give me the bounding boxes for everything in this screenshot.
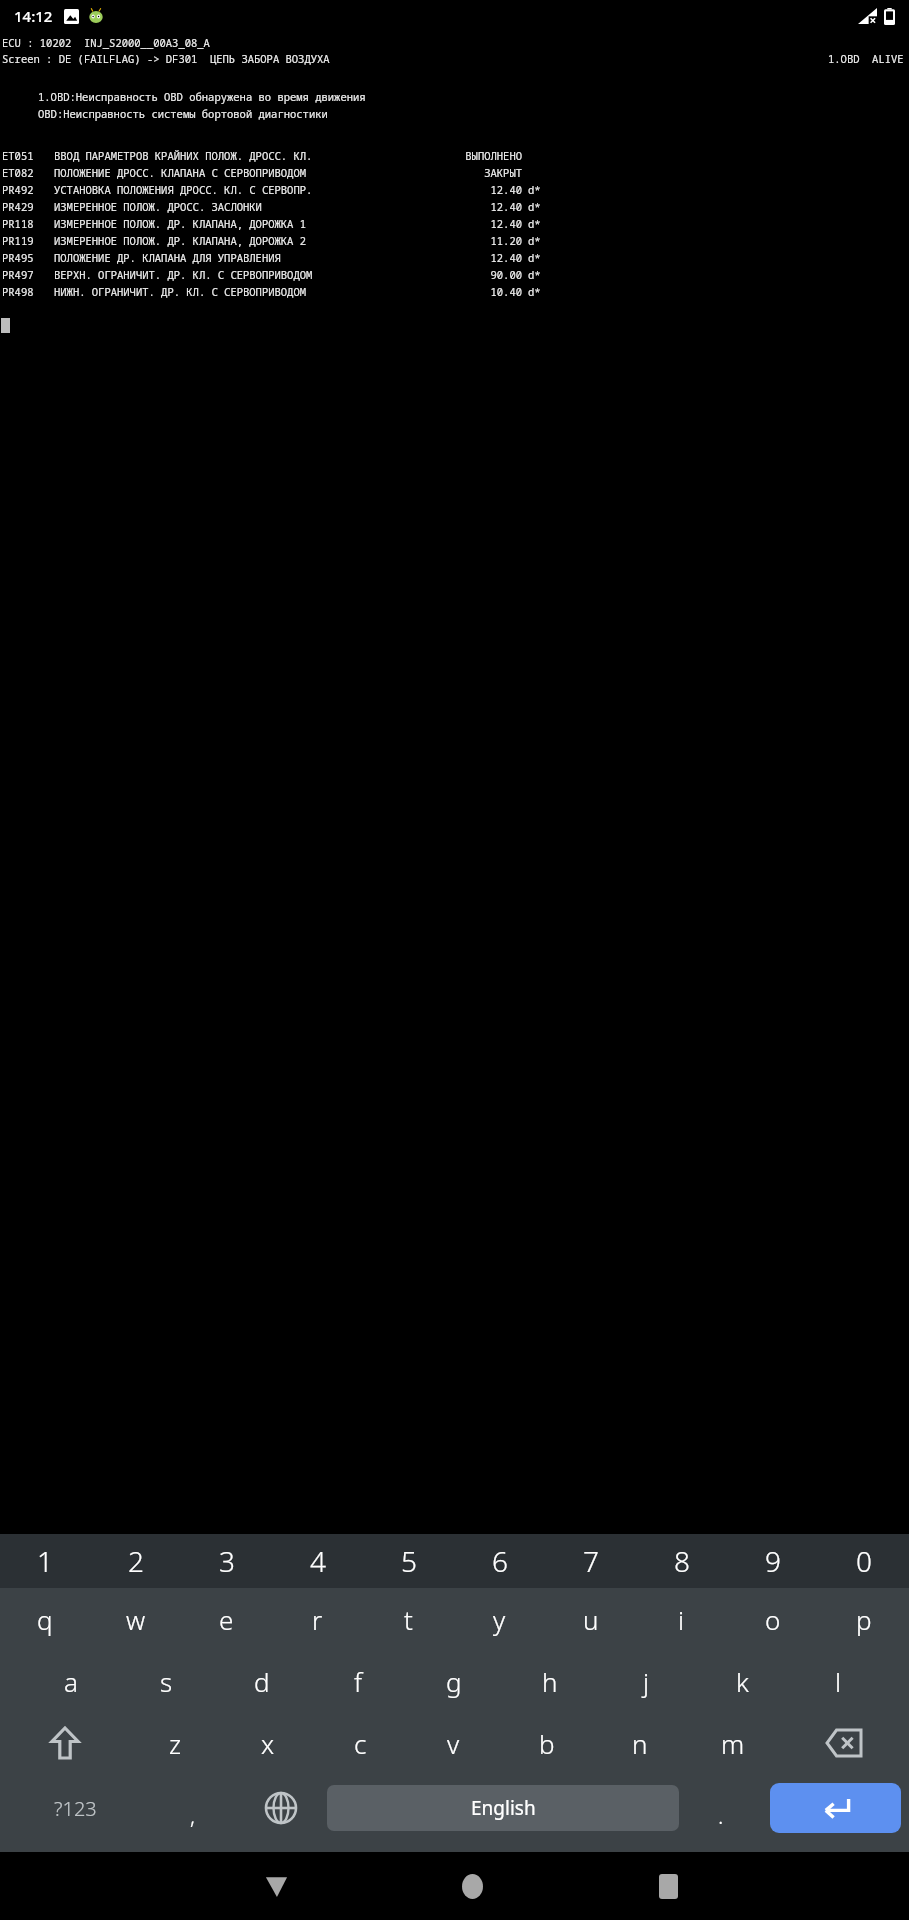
button[interactable]: 1 <box>0 1534 90 1588</box>
button[interactable]: t <box>363 1588 454 1650</box>
staticText: c <box>354 1726 367 1761</box>
button[interactable]: x <box>221 1712 314 1774</box>
button[interactable]: ET082 <box>2 166 909 180</box>
button[interactable]: 2 <box>90 1534 181 1588</box>
staticText: ИЗМЕРЕННОЕ ПОЛОЖ. ДР. КЛАПАНА, ДОРОЖКА 1 <box>54 217 444 231</box>
staticText: d* <box>528 268 541 282</box>
button[interactable]: Change language <box>234 1774 327 1842</box>
button[interactable]: 3 <box>181 1534 272 1588</box>
staticText: 12.40 <box>444 251 522 265</box>
staticText: Screen : DE (FAILFLAG) -> DF301 ЦЕПЬ ЗАБ… <box>2 52 330 66</box>
button[interactable]: q <box>0 1588 90 1650</box>
staticText: t <box>404 1602 413 1637</box>
button[interactable]: 8 <box>636 1534 727 1588</box>
button[interactable]: 0 <box>818 1534 909 1588</box>
staticText: PR119 <box>2 234 54 248</box>
button[interactable]: 5 <box>363 1534 454 1588</box>
button[interactable]: 6 <box>454 1534 545 1588</box>
button[interactable]: Backspace <box>779 1712 909 1774</box>
staticText: r <box>312 1602 323 1637</box>
staticText: g <box>446 1664 462 1699</box>
button[interactable]: w <box>90 1588 181 1650</box>
button[interactable]: Enter <box>770 1783 901 1833</box>
staticText: 12.40 <box>444 217 522 231</box>
button[interactable]: Recents <box>570 1852 766 1920</box>
staticText: , <box>190 1800 195 1830</box>
staticText: i <box>678 1602 685 1637</box>
button[interactable]: k <box>694 1650 790 1712</box>
button[interactable]: PR495 <box>2 251 909 265</box>
staticText: ET082 <box>2 166 54 180</box>
staticText: ПОЛОЖЕНИЕ ДРОСС. КЛАПАНА С СЕРВОПРИВОДОМ <box>54 166 444 180</box>
button[interactable]: f <box>310 1650 406 1712</box>
staticText: v <box>447 1726 460 1761</box>
staticText: 7 <box>583 1542 599 1580</box>
button[interactable]: Back <box>178 1852 374 1920</box>
button[interactable]: o <box>727 1588 818 1650</box>
button[interactable]: s <box>118 1650 214 1712</box>
button[interactable]: p <box>818 1588 909 1650</box>
button[interactable]: m <box>686 1712 779 1774</box>
button[interactable]: English <box>327 1785 679 1831</box>
button[interactable]: , <box>151 1774 234 1842</box>
staticText: w <box>126 1602 146 1637</box>
staticText: 10.40 <box>444 285 522 299</box>
button[interactable]: Home <box>374 1852 570 1920</box>
staticText: PR498 <box>2 285 54 299</box>
button[interactable]: h <box>502 1650 598 1712</box>
staticText: ИЗМЕРЕННОЕ ПОЛОЖ. ДР. КЛАПАНА, ДОРОЖКА 2 <box>54 234 444 248</box>
button[interactable]: g <box>406 1650 502 1712</box>
button[interactable]: Shift <box>0 1712 129 1774</box>
button[interactable]: PR497 <box>2 268 909 282</box>
staticText: k <box>736 1664 749 1699</box>
staticText: h <box>542 1664 558 1699</box>
button[interactable]: ?123 <box>0 1774 151 1842</box>
staticText: 12.40 <box>444 183 522 197</box>
button[interactable]: r <box>272 1588 363 1650</box>
button[interactable]: a <box>23 1650 118 1712</box>
button[interactable]: b <box>500 1712 593 1774</box>
button[interactable]: PR118 <box>2 217 909 231</box>
button[interactable]: PR119 <box>2 234 909 248</box>
button[interactable]: l <box>790 1650 886 1712</box>
button[interactable]: u <box>545 1588 636 1650</box>
staticText: d* <box>528 251 541 265</box>
button[interactable]: c <box>314 1712 407 1774</box>
staticText: 9 <box>765 1542 781 1580</box>
button[interactable]: 9 <box>727 1534 818 1588</box>
button[interactable]: 4 <box>272 1534 363 1588</box>
staticText: l <box>835 1664 842 1699</box>
button[interactable]: j <box>598 1650 694 1712</box>
button[interactable]: ET051 <box>2 149 909 163</box>
button[interactable]: 7 <box>545 1534 636 1588</box>
staticText: 4 <box>310 1542 326 1580</box>
staticText: НИЖН. ОГРАНИЧИТ. ДР. КЛ. С СЕРВОПРИВОДОМ <box>54 285 444 299</box>
button[interactable]: v <box>407 1712 500 1774</box>
button[interactable]: PR492 <box>2 183 909 197</box>
staticText: ВВОД ПАРАМЕТРОВ КРАЙНИХ ПОЛОЖ. ДРОСС. КЛ… <box>54 149 444 163</box>
staticText: u <box>583 1602 599 1637</box>
staticText: n <box>632 1726 648 1761</box>
staticText: ЗАКРЫТ <box>444 166 522 180</box>
staticText: PR118 <box>2 217 54 231</box>
button[interactable]: . <box>679 1774 762 1842</box>
button[interactable]: e <box>181 1588 272 1650</box>
button[interactable]: i <box>636 1588 727 1650</box>
staticText: PR429 <box>2 200 54 214</box>
staticText: OBD:Неисправность системы бортовой диагн… <box>38 107 328 121</box>
staticText: 8 <box>674 1542 690 1580</box>
staticText: 2 <box>128 1542 144 1580</box>
staticText: ВЫПОЛНЕНО <box>444 149 522 163</box>
staticText: ECU : 10202 INJ_S2000__00A3_08_A <box>2 36 210 50</box>
staticText: f <box>354 1664 363 1699</box>
button[interactable]: n <box>593 1712 686 1774</box>
button[interactable]: PR429 <box>2 200 909 214</box>
staticText: 6 <box>492 1542 508 1580</box>
button[interactable]: y <box>454 1588 545 1650</box>
button[interactable]: PR498 <box>2 285 909 299</box>
button[interactable]: z <box>129 1712 221 1774</box>
staticText: d* <box>528 285 541 299</box>
staticText: ВЕРХН. ОГРАНИЧИТ. ДР. КЛ. С СЕРВОПРИВОДО… <box>54 268 444 282</box>
staticText: d* <box>528 183 541 197</box>
button[interactable]: d <box>214 1650 310 1712</box>
